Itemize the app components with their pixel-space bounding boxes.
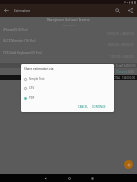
staticText: Share estimation via:: [24, 67, 55, 71]
staticText: Simple Text: [29, 77, 45, 81]
button[interactable]: CANCEL: [76, 103, 90, 111]
staticText: PDF: [29, 96, 35, 100]
button[interactable]: CSV: [24, 84, 35, 92]
staticText: Estimation: [14, 9, 31, 13]
button[interactable]: Search: [111, 4, 124, 17]
button[interactable]: TVS Gold Keyboard (5 Pcs): [0, 50, 137, 62]
staticText: TVS Gold Keyboard (5 Pcs): [3, 51, 42, 55]
staticText: 12000.00 = 48000.00: [107, 32, 134, 36]
button[interactable]: TOTAL 134000.00: [0, 75, 137, 80]
button[interactable]: Back: [0, 4, 13, 17]
button[interactable]: iPhone6S (4 Pcs): [0, 27, 137, 39]
staticText: 134000.00: [122, 64, 136, 68]
staticText: CANCEL: [78, 105, 88, 109]
button[interactable]: Home: [66, 175, 72, 181]
staticText: CONTINUE: [92, 105, 106, 109]
button[interactable]: Back: [42, 175, 48, 181]
staticText: 1200.00 = 6000.00: [110, 55, 134, 59]
staticText: ULTZ Monitor (16 Pcs): [3, 39, 36, 43]
staticText: 0.00: [128, 70, 134, 74]
staticText: Discount: [116, 70, 128, 74]
staticText: Total Item: 3: [62, 23, 76, 26]
staticText: TOTAL 134000.00: [112, 76, 136, 80]
button[interactable]: PDF: [24, 94, 35, 102]
button[interactable]: Recent apps: [89, 175, 95, 181]
button[interactable]: Share: [124, 4, 137, 17]
staticText: 5000.00 = 80000.00: [108, 43, 134, 47]
staticText: Nanjivan School Items: [47, 17, 90, 22]
button[interactable]: CONTINUE: [90, 103, 114, 111]
button[interactable]: Add item: [124, 160, 133, 169]
button[interactable]: ULTZ Monitor (16 Pcs): [0, 38, 137, 50]
button[interactable]: Simple Text: [24, 75, 45, 83]
staticText: CSV: [29, 86, 35, 90]
staticText: iPhone6S (4 Pcs): [3, 28, 28, 32]
staticText: Sub Total: [110, 64, 123, 68]
